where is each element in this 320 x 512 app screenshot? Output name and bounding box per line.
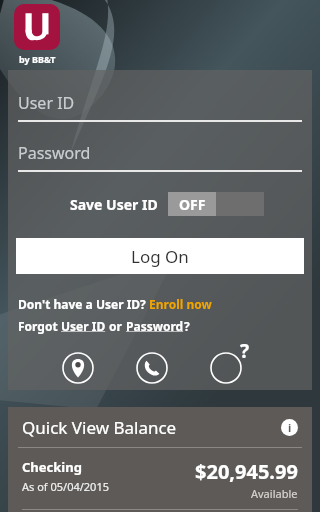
button[interactable]: Call us xyxy=(136,352,168,384)
staticText: ? xyxy=(240,338,250,362)
button[interactable]: Password xyxy=(126,318,184,334)
button[interactable]: Save User ID toggle, off xyxy=(168,192,264,216)
staticText: Log On xyxy=(131,245,189,268)
button[interactable]: Find a location xyxy=(62,352,94,384)
staticText: Don't have a User ID? xyxy=(18,296,149,312)
staticText: Save User ID xyxy=(70,195,158,214)
button[interactable]: User ID xyxy=(18,92,302,122)
button[interactable]: Log On xyxy=(16,238,304,274)
staticText: Available xyxy=(251,486,298,501)
staticText: OFF xyxy=(179,195,206,214)
staticText: or xyxy=(106,318,126,334)
button[interactable]: Help xyxy=(210,352,242,384)
button[interactable]: Enroll now xyxy=(149,296,212,312)
staticText: ? xyxy=(184,318,190,334)
staticText: Password xyxy=(18,142,91,164)
staticText: by BB&T xyxy=(19,53,56,65)
staticText: i xyxy=(288,420,292,435)
staticText: User ID xyxy=(18,92,75,114)
button[interactable]: Checking xyxy=(22,458,298,501)
other: U by BB&T logo xyxy=(14,4,60,50)
staticText: $20,945.99 xyxy=(195,458,298,485)
staticText: Forgot xyxy=(18,318,61,334)
button[interactable]: Information xyxy=(281,419,298,436)
button[interactable]: Quick View Balance xyxy=(8,407,312,447)
staticText: Quick View Balance xyxy=(22,416,177,439)
staticText: Checking xyxy=(22,458,82,476)
button[interactable]: Password xyxy=(18,142,302,172)
button[interactable]: User ID xyxy=(61,318,106,334)
staticText: As of 05/04/2015 xyxy=(22,479,109,494)
